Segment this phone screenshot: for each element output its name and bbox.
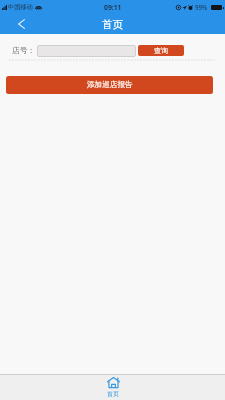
staticText: 添加巡店报告	[87, 80, 133, 90]
staticText: 店号：	[12, 45, 36, 55]
staticText: 查询	[154, 46, 168, 55]
button[interactable]: 添加巡店报告	[6, 76, 213, 94]
button[interactable]: Back	[0, 14, 42, 34]
staticText: 首页	[107, 390, 119, 398]
staticText: 09:11	[104, 3, 122, 12]
button[interactable]	[37, 45, 136, 57]
button[interactable]: 查询	[138, 45, 184, 56]
staticText: 99%	[195, 3, 208, 11]
staticText: 中国移动	[8, 3, 33, 11]
staticText: 首页	[102, 18, 123, 31]
button[interactable]: 首页	[85, 374, 141, 400]
